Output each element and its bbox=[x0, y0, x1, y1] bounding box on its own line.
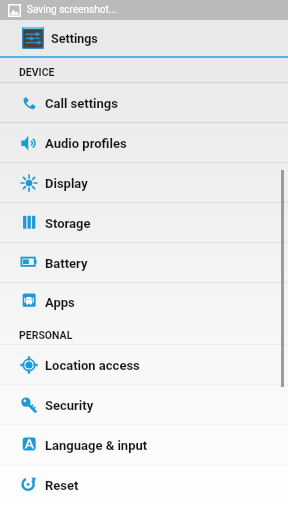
button[interactable]: Storage bbox=[0, 203, 288, 243]
staticText: Apps bbox=[45, 295, 75, 310]
staticText: PERSONAL bbox=[19, 329, 73, 341]
staticText: Reset bbox=[45, 478, 79, 493]
staticText: Audio profiles bbox=[45, 136, 127, 151]
staticText: Display bbox=[45, 176, 88, 191]
button[interactable]: Apps bbox=[0, 283, 288, 321]
button[interactable]: Audio profiles bbox=[0, 123, 288, 163]
button[interactable]: Display bbox=[0, 163, 288, 203]
staticText: Security bbox=[45, 398, 94, 413]
staticText: DEVICE bbox=[19, 66, 55, 78]
button[interactable]: Call settings bbox=[0, 83, 288, 123]
button[interactable]: Battery bbox=[0, 243, 288, 283]
staticText: Storage bbox=[45, 216, 91, 231]
button[interactable]: Security bbox=[0, 385, 288, 425]
staticText: Battery bbox=[45, 256, 88, 271]
staticText: Call settings bbox=[45, 96, 118, 111]
button[interactable]: Reset bbox=[0, 465, 288, 505]
staticText: Language & input bbox=[45, 438, 148, 453]
staticText: Saving screenshot... bbox=[27, 4, 117, 16]
button[interactable]: Language & input bbox=[0, 425, 288, 465]
staticText: Settings bbox=[51, 31, 98, 46]
staticText: Location access bbox=[45, 358, 140, 373]
button[interactable]: Location access bbox=[0, 345, 288, 385]
